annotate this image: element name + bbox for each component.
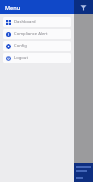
staticText: Menu	[5, 4, 21, 11]
staticText: Logout	[14, 55, 28, 61]
button[interactable]: Filter	[74, 0, 93, 14]
button[interactable]: Dashboard	[3, 17, 71, 27]
button[interactable]: Logout	[3, 53, 71, 63]
staticText: Config	[14, 43, 27, 49]
button[interactable]: Compliance Alert	[3, 29, 71, 39]
staticText: Compliance Alert	[14, 31, 48, 37]
staticText: Dashboard	[14, 19, 36, 25]
button[interactable]: Config	[3, 41, 71, 51]
